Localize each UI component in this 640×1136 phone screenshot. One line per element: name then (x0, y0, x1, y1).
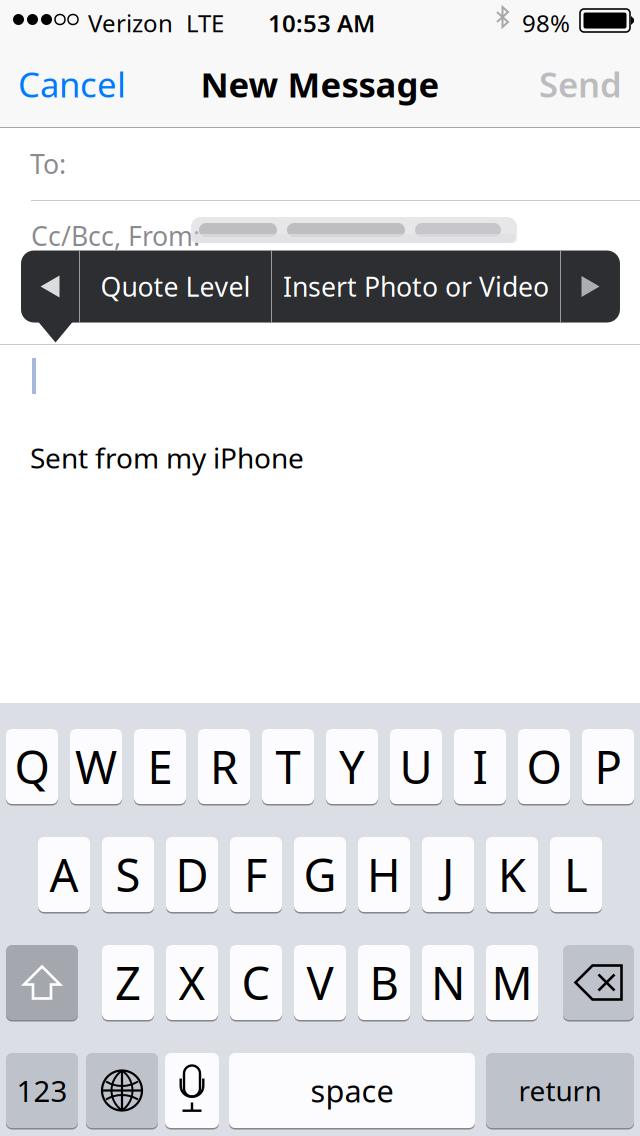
staticText: T (275, 736, 300, 797)
button[interactable]: Y (326, 728, 378, 805)
button[interactable]: Next (561, 250, 620, 322)
button[interactable]: Dictate (165, 1052, 219, 1129)
staticText: space (310, 1070, 393, 1111)
staticText: Q (14, 736, 49, 797)
staticText: J (442, 844, 454, 905)
button[interactable]: Quote Level (80, 250, 271, 322)
staticText: P (594, 736, 621, 797)
staticText: H (367, 844, 401, 905)
button[interactable]: G (294, 836, 346, 913)
staticText: Send (539, 61, 622, 107)
button[interactable]: L (550, 836, 602, 913)
staticText: D (175, 844, 208, 905)
staticText: Z (115, 952, 141, 1013)
button[interactable]: A (38, 836, 90, 913)
button[interactable]: Z (102, 944, 154, 1021)
staticText: Verizon (88, 7, 173, 39)
staticText: Sent from my iPhone (30, 439, 304, 476)
staticText: G (303, 844, 336, 905)
button[interactable]: O (518, 728, 570, 805)
button[interactable]: U (390, 728, 442, 805)
staticText: K (498, 844, 526, 905)
button[interactable]: Cancel (0, 40, 144, 128)
button[interactable]: W (70, 728, 122, 805)
button[interactable]: K (486, 836, 538, 913)
button[interactable]: T (262, 728, 314, 805)
button[interactable]: space (229, 1052, 475, 1129)
staticText: 10:53 AM (268, 7, 375, 39)
staticText: X (178, 952, 205, 1013)
staticText: S (115, 844, 140, 905)
button[interactable]: N (422, 944, 474, 1021)
staticText: L (564, 844, 588, 905)
button[interactable]: return (486, 1052, 634, 1129)
staticText: O (526, 736, 561, 797)
button[interactable]: H (358, 836, 410, 913)
staticText: Cc/Bcc, From: (31, 218, 200, 253)
button[interactable]: V (294, 944, 346, 1021)
button[interactable]: P (582, 728, 634, 805)
button[interactable]: Previous (21, 250, 79, 322)
staticText: Insert Photo or Video (283, 269, 549, 304)
staticText: F (244, 844, 268, 905)
staticText: Y (339, 736, 365, 797)
button[interactable]: R (198, 728, 250, 805)
staticText: I (472, 736, 487, 797)
button[interactable]: D (166, 836, 218, 913)
button[interactable]: I (454, 728, 506, 805)
staticText: To: (30, 146, 66, 181)
button[interactable]: 123 (6, 1052, 78, 1129)
staticText: M (491, 952, 532, 1013)
button[interactable]: B (358, 944, 410, 1021)
staticText: Cancel (18, 61, 126, 107)
staticText: 123 (16, 1071, 67, 1110)
staticText: C (241, 952, 270, 1013)
staticText: return (518, 1072, 601, 1109)
staticText: R (210, 736, 238, 797)
button[interactable]: M (486, 944, 538, 1021)
button[interactable]: Shift (6, 944, 78, 1021)
button[interactable]: Send (521, 40, 640, 128)
button[interactable]: E (134, 728, 186, 805)
button[interactable]: F (230, 836, 282, 913)
staticText: E (147, 736, 172, 797)
staticText: New Message (200, 61, 439, 107)
staticText: 98% (522, 7, 570, 39)
staticText: Quote Level (100, 269, 250, 304)
staticText: U (399, 736, 432, 797)
button[interactable]: Delete (563, 944, 634, 1021)
button[interactable]: Next keyboard (86, 1052, 158, 1129)
button[interactable]: X (166, 944, 218, 1021)
staticText: V (306, 952, 333, 1013)
button[interactable]: J (422, 836, 474, 913)
staticText: W (75, 736, 117, 797)
staticText: N (431, 952, 465, 1013)
staticText: B (369, 952, 398, 1013)
button[interactable]: S (102, 836, 154, 913)
staticText: A (49, 844, 78, 905)
button[interactable]: Q (6, 728, 58, 805)
staticText: LTE (186, 7, 224, 39)
button[interactable]: Insert Photo or Video (272, 250, 560, 322)
button[interactable]: C (230, 944, 282, 1021)
